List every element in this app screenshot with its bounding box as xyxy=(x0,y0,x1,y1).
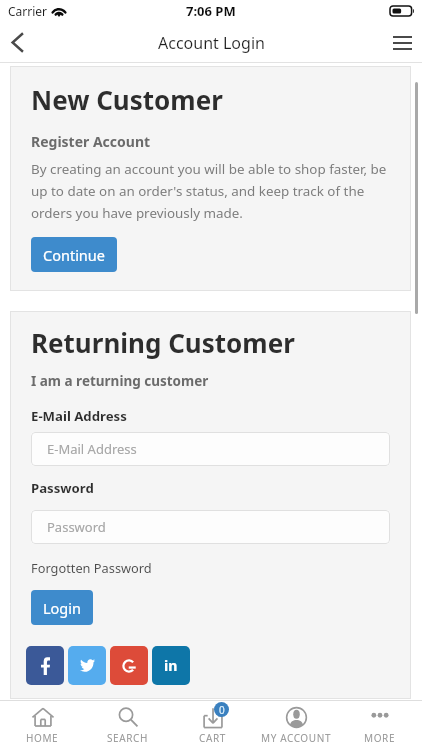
staticText: Continue xyxy=(43,245,105,265)
button[interactable]: Google xyxy=(110,646,148,685)
staticText: 0 xyxy=(219,703,225,717)
staticText: New Customer xyxy=(31,82,223,117)
staticText: MY ACCOUNT xyxy=(261,731,332,745)
button[interactable]: MY ACCOUNT xyxy=(254,701,338,750)
staticText: Password xyxy=(47,518,106,536)
staticText: Account Login xyxy=(158,32,265,54)
staticText: Carrier xyxy=(8,3,48,19)
staticText: Returning Customer xyxy=(31,325,295,360)
button[interactable]: Back xyxy=(0,22,34,63)
staticText: E-Mail Address xyxy=(31,407,127,425)
button[interactable]: HOME xyxy=(0,701,85,750)
button[interactable]: 0 xyxy=(170,701,254,750)
staticText: HOME xyxy=(26,731,59,745)
button[interactable]: Password xyxy=(31,510,390,544)
button[interactable]: SEARCH xyxy=(85,701,170,750)
staticText: By creating an account you will be able … xyxy=(31,160,390,222)
staticText: 7:06 PM xyxy=(186,2,236,20)
staticText: Login xyxy=(43,598,81,618)
staticText: CART xyxy=(199,731,226,745)
button[interactable]: Facebook xyxy=(26,646,64,685)
staticText: in xyxy=(164,656,178,675)
staticText: MORE xyxy=(364,731,396,745)
button[interactable]: Forgotten Password xyxy=(31,559,152,576)
button[interactable]: E-Mail Address xyxy=(31,432,390,466)
staticText: I am a returning customer xyxy=(31,372,209,390)
staticText: Password xyxy=(31,479,94,497)
button[interactable]: Login xyxy=(31,590,93,625)
button[interactable]: Menu xyxy=(382,22,422,63)
staticText: E-Mail Address xyxy=(47,440,137,458)
staticText: Register Account xyxy=(31,132,151,151)
button[interactable]: LinkedIn xyxy=(152,646,190,685)
button[interactable]: Twitter xyxy=(68,646,106,685)
button[interactable]: MORE xyxy=(338,701,422,750)
staticText: SEARCH xyxy=(107,731,148,745)
button[interactable]: Continue xyxy=(31,237,117,272)
